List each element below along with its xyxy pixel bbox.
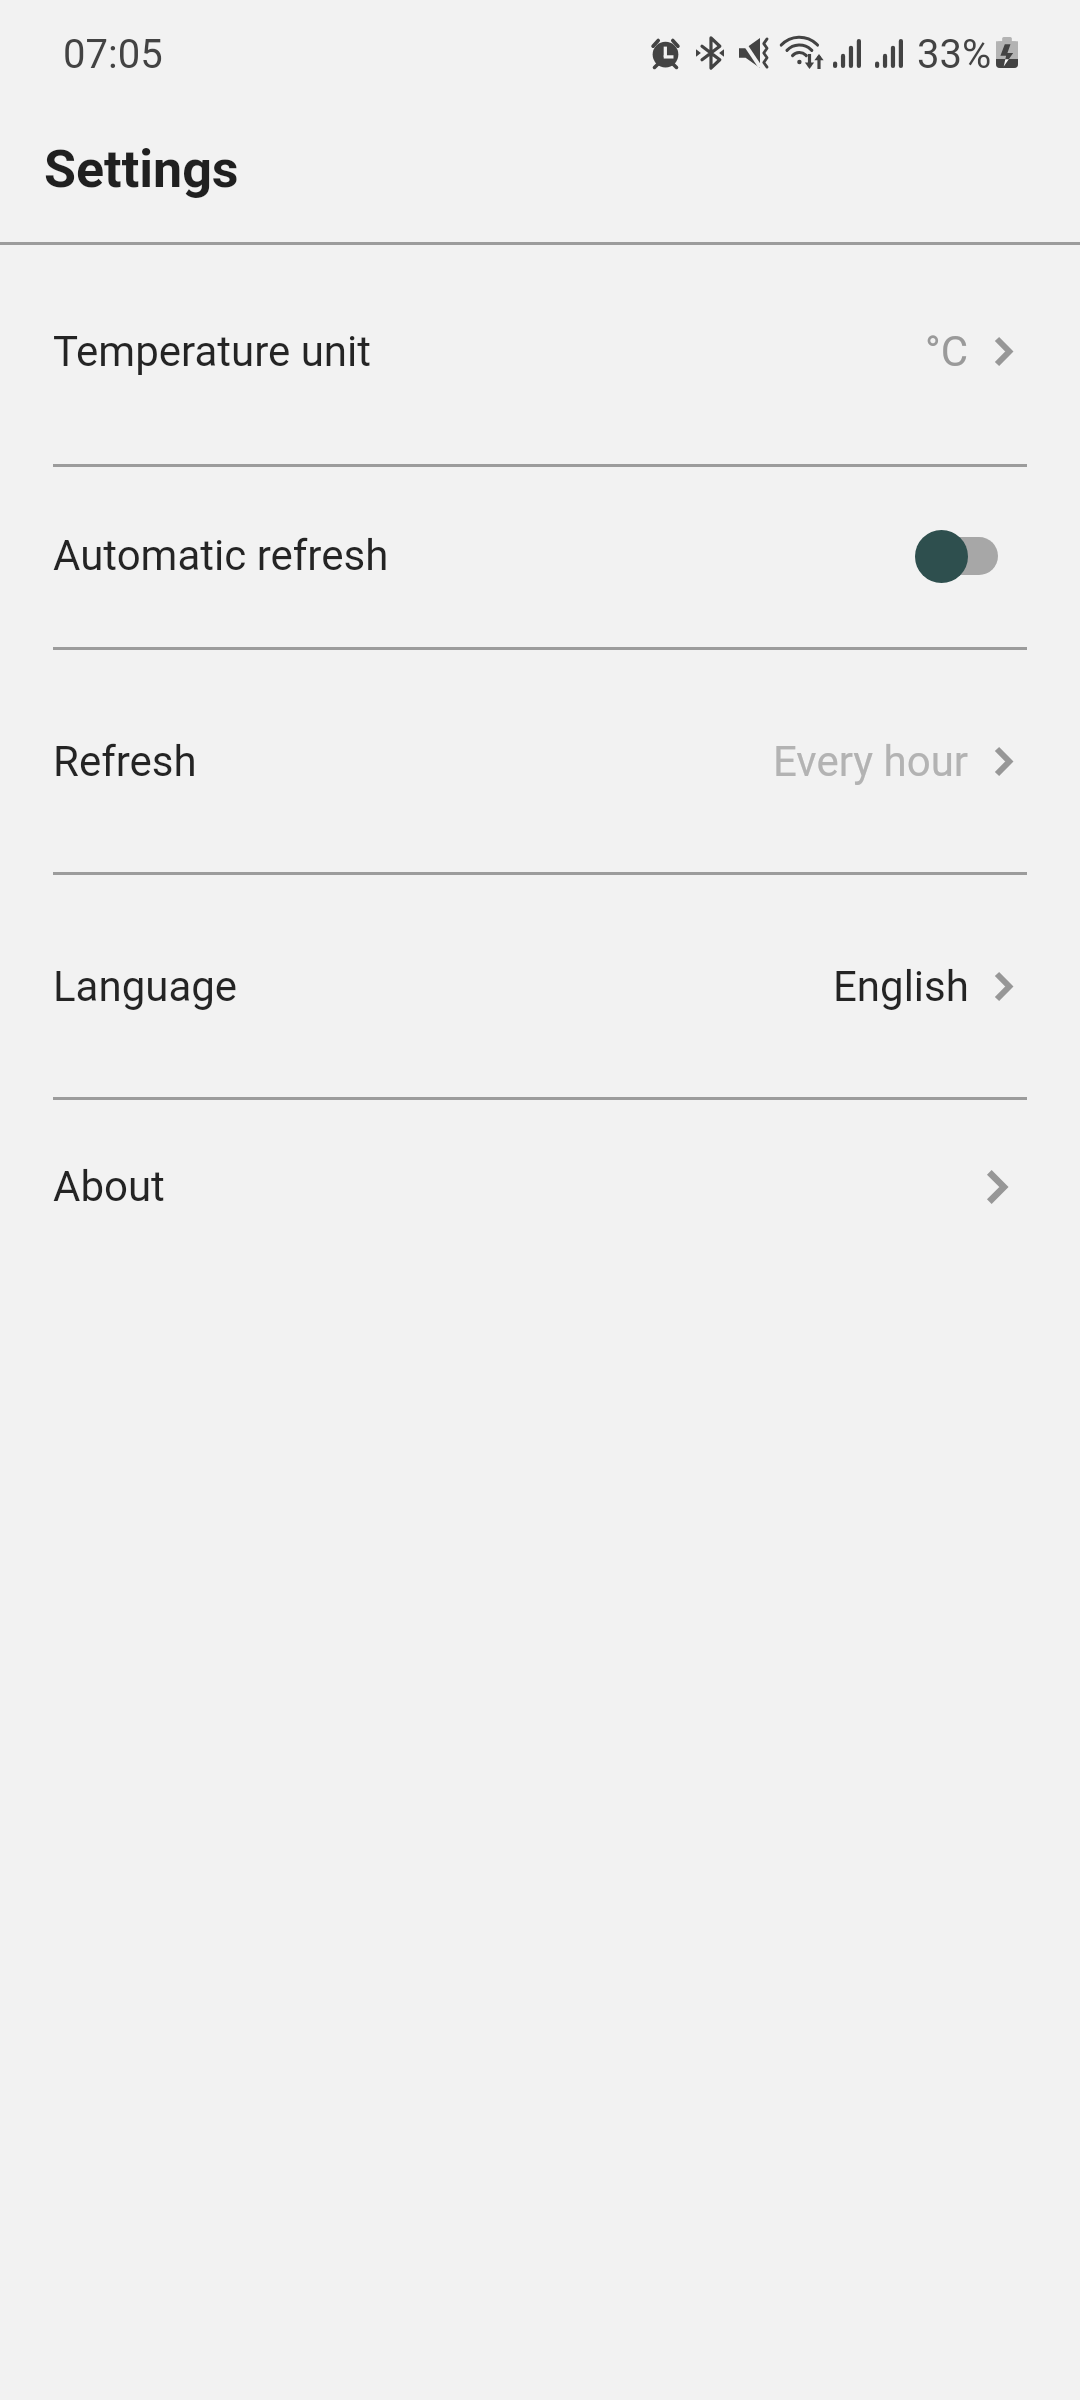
button[interactable]: Automatic refresh switch, off — [922, 528, 998, 584]
staticText: Every hour — [773, 737, 969, 786]
staticText: Settings — [44, 139, 239, 200]
staticText: Automatic refresh — [53, 531, 389, 580]
button[interactable]: About — [0, 1100, 1080, 1276]
staticText: Refresh — [53, 737, 197, 786]
staticText: 07:05 — [63, 31, 163, 78]
staticText: Temperature unit — [53, 327, 371, 376]
staticText: English — [833, 962, 969, 1011]
button[interactable]: Language — [0, 875, 1080, 1097]
button[interactable]: Temperature unit — [0, 245, 1080, 464]
button[interactable]: Automatic refresh — [0, 467, 1080, 647]
staticText: °C — [925, 327, 969, 376]
staticText: Language — [53, 962, 238, 1011]
button[interactable]: Refresh — [0, 650, 1080, 872]
staticText: About — [53, 1162, 165, 1211]
staticText: 33% — [917, 31, 992, 78]
